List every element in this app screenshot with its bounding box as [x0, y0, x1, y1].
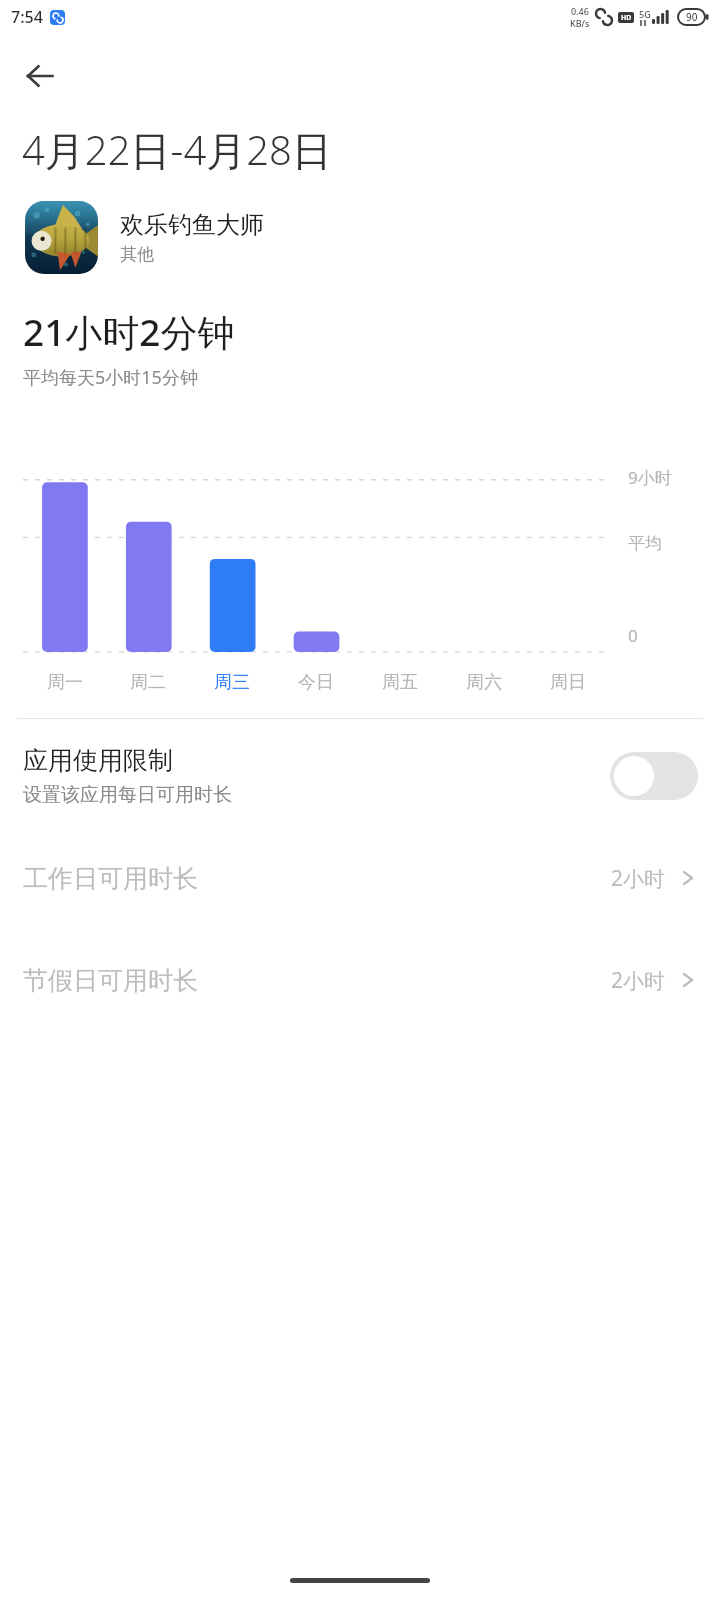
staticText: 周五	[382, 671, 418, 694]
staticText: HD	[621, 13, 632, 23]
button[interactable]: 周二	[106, 671, 190, 694]
staticText: 90	[686, 10, 698, 24]
staticText: 4月22日-4月28日	[22, 122, 332, 177]
button[interactable]: 工作日可用时长	[0, 827, 720, 929]
staticText: 9小时	[628, 466, 672, 489]
button[interactable]: 周日	[526, 671, 610, 694]
button[interactable]: 今日	[274, 671, 358, 694]
staticText: 2小时	[611, 864, 666, 893]
button[interactable]: 周六	[442, 671, 526, 694]
staticText: 周日	[550, 671, 586, 694]
staticText: KB/s	[570, 17, 590, 29]
staticText: 21小时2分钟	[23, 306, 235, 357]
button[interactable]: 欢乐钓鱼大师	[0, 201, 720, 274]
staticText: 其他	[120, 244, 154, 265]
staticText: 周一	[47, 671, 83, 694]
staticText: 周三	[214, 671, 250, 694]
staticText: 周六	[466, 671, 502, 694]
staticText: 平均每天5小时15分钟	[23, 365, 198, 390]
staticText: 周二	[130, 671, 166, 694]
staticText: 节假日可用时长	[23, 965, 611, 996]
staticText: 5G	[639, 8, 651, 20]
staticText: 欢乐钓鱼大师	[120, 210, 264, 240]
staticText: 今日	[298, 671, 334, 694]
button[interactable]: 周五	[358, 671, 442, 694]
staticText: 0.46	[571, 5, 589, 17]
staticText: 工作日可用时长	[23, 863, 611, 894]
button[interactable]: 节假日可用时长	[0, 929, 720, 1031]
staticText: 2小时	[611, 966, 666, 995]
button[interactable]: 应用使用限制开关	[610, 752, 698, 800]
button[interactable]: 返回	[12, 48, 68, 104]
staticText: 平均	[628, 533, 662, 554]
button[interactable]: 周三	[190, 671, 274, 694]
staticText: 0	[628, 624, 638, 647]
button[interactable]: 应用使用限制	[0, 745, 720, 807]
staticText: 7:54	[11, 6, 43, 28]
button[interactable]: 周一	[23, 671, 106, 694]
staticText: 设置该应用每日可用时长	[23, 783, 232, 807]
staticText: 应用使用限制	[23, 745, 173, 776]
